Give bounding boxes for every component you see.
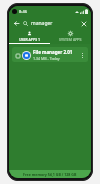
staticText: SYSTEM APPS <box>59 37 82 42</box>
staticText: manager <box>31 20 79 27</box>
staticText: Free memory 54,1 GB / 128 GB <box>23 172 77 177</box>
staticText: USER APPS 1 <box>19 37 40 42</box>
button[interactable]: Select app <box>14 52 21 59</box>
staticText: File manager 2.01 <box>33 49 73 55</box>
button[interactable]: SYSTEM APPS <box>50 30 91 44</box>
staticText: 1.34 MB - Today <box>33 56 60 61</box>
button[interactable]: Select app <box>12 47 88 62</box>
button[interactable]: Clear search <box>79 19 88 28</box>
staticText: 8:46 <box>19 9 27 14</box>
button[interactable]: Back <box>12 19 21 28</box>
button[interactable]: Free memory 54,1 GB / 128 GB <box>9 170 91 178</box>
button[interactable]: More options <box>78 51 86 59</box>
button[interactable]: USER APPS 1 <box>9 30 50 44</box>
